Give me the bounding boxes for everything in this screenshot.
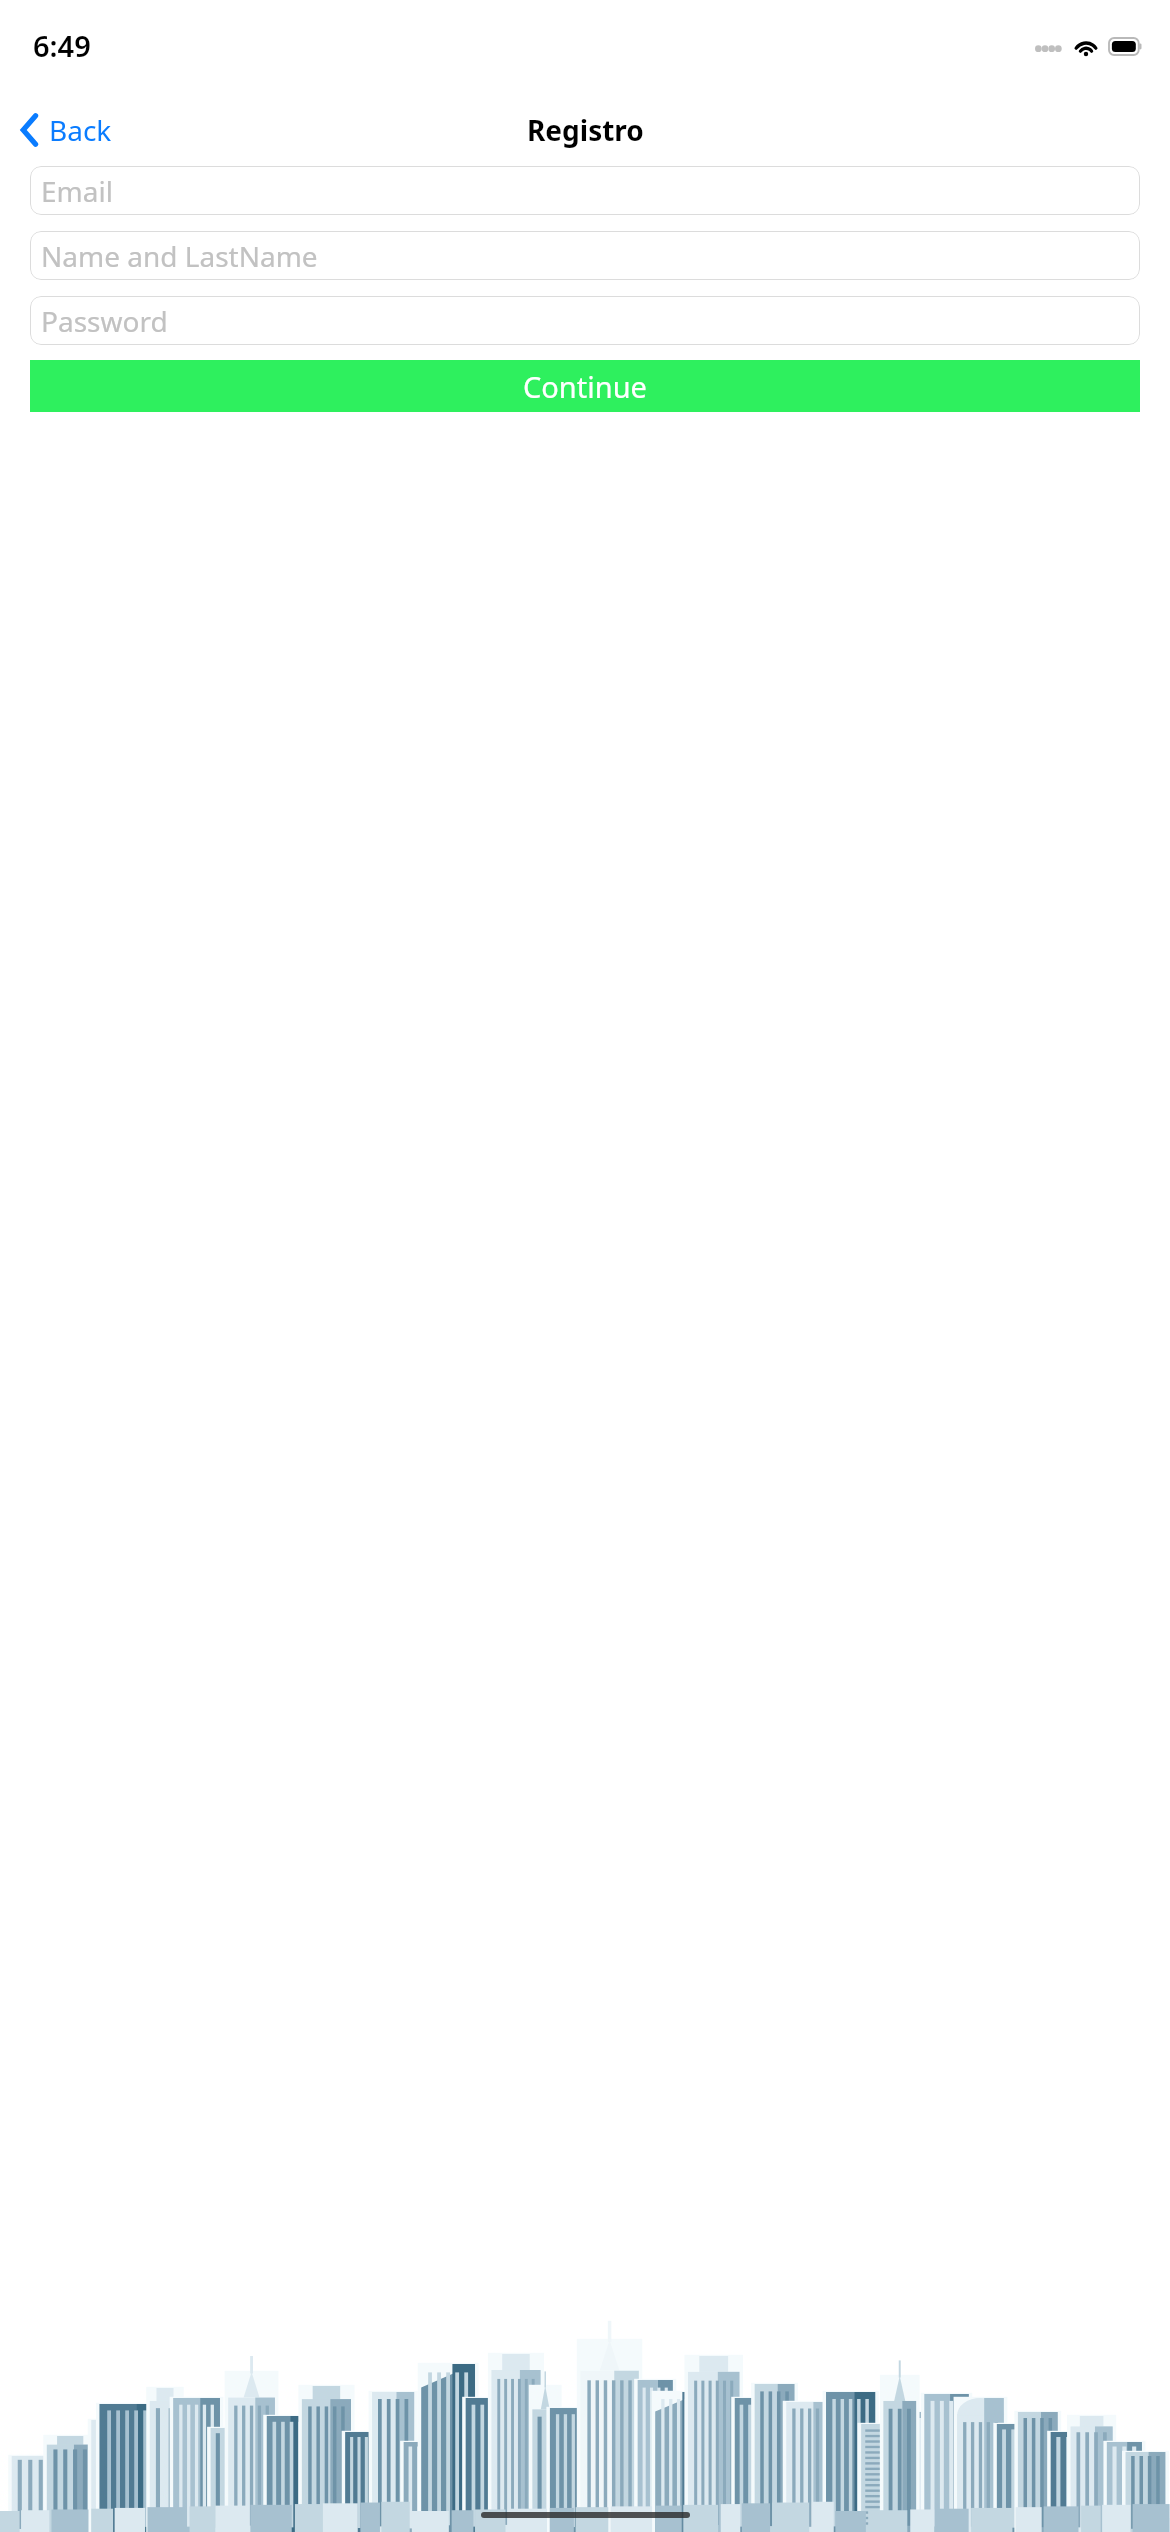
button[interactable]: Back <box>14 105 118 155</box>
staticText: Registro <box>527 111 644 149</box>
button[interactable]: Continue <box>30 360 1140 412</box>
button[interactable]: Name and LastName <box>30 231 1140 280</box>
staticText: Password <box>41 302 168 340</box>
staticText: Back <box>49 111 112 149</box>
button[interactable]: Password <box>30 296 1140 345</box>
staticText: Name and LastName <box>41 237 318 275</box>
staticText: Email <box>41 172 113 210</box>
staticText: Continue <box>523 367 647 406</box>
button[interactable]: Email <box>30 166 1140 215</box>
staticText: 6:49 <box>33 26 91 65</box>
